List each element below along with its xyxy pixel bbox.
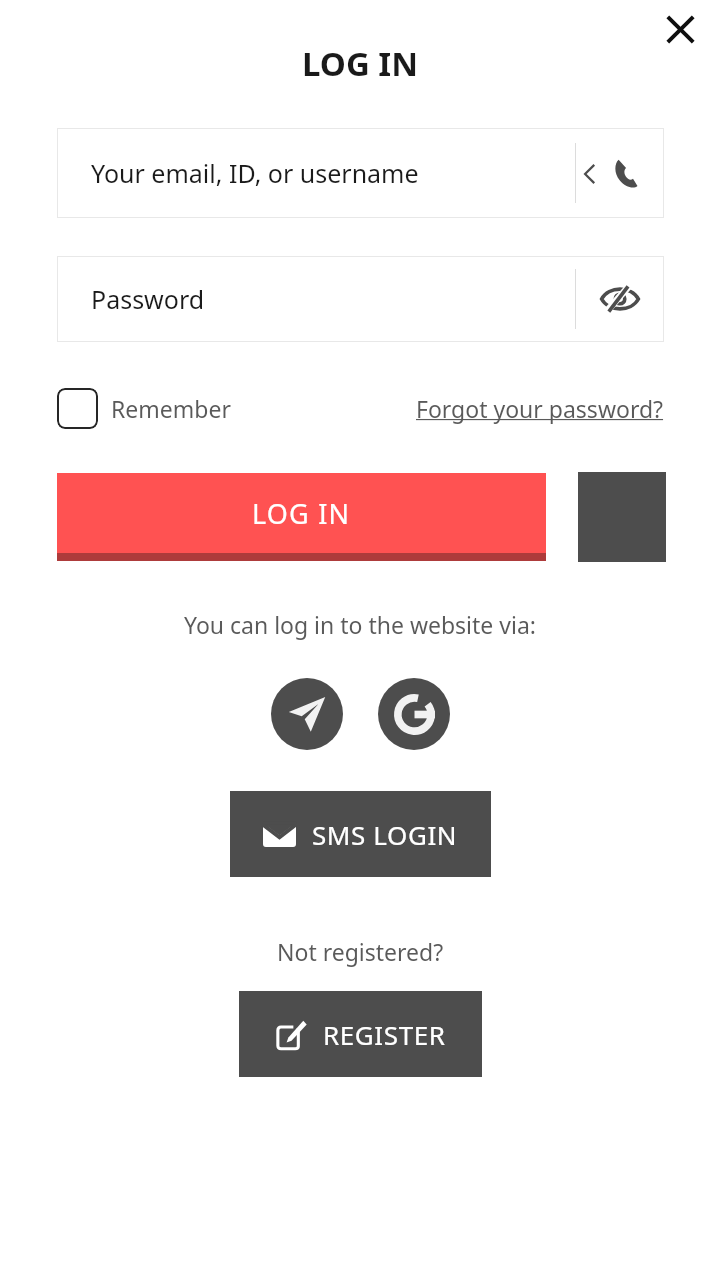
staticText: Remember — [111, 393, 231, 424]
staticText: SMS LOGIN — [312, 817, 458, 852]
button[interactable]: Log in with Telegram — [271, 678, 343, 750]
staticText: Not registered? — [277, 936, 444, 967]
button[interactable]: Forgot your password? — [416, 393, 664, 424]
staticText: You can log in to the website via: — [184, 609, 536, 640]
button[interactable]: LOG IN — [57, 473, 546, 561]
button[interactable]: Remember — [57, 388, 231, 429]
button[interactable]: Log in with Google — [378, 678, 450, 750]
staticText: Password — [91, 282, 205, 316]
button[interactable]: Phone login — [581, 158, 642, 189]
button[interactable]: Show password — [592, 271, 648, 327]
staticText: Your email, ID, or username — [91, 156, 419, 190]
button[interactable]: Your email, ID, or username — [57, 128, 664, 218]
button[interactable]: SMS LOGIN — [230, 791, 491, 877]
staticText: LOG IN — [252, 495, 351, 532]
button[interactable]: Close — [651, 0, 709, 58]
staticText: Forgot your password? — [416, 393, 664, 424]
button[interactable]: REGISTER — [239, 991, 482, 1077]
button[interactable]: Password — [57, 256, 664, 342]
staticText: REGISTER — [323, 1017, 446, 1052]
staticText: LOG IN — [302, 41, 419, 86]
